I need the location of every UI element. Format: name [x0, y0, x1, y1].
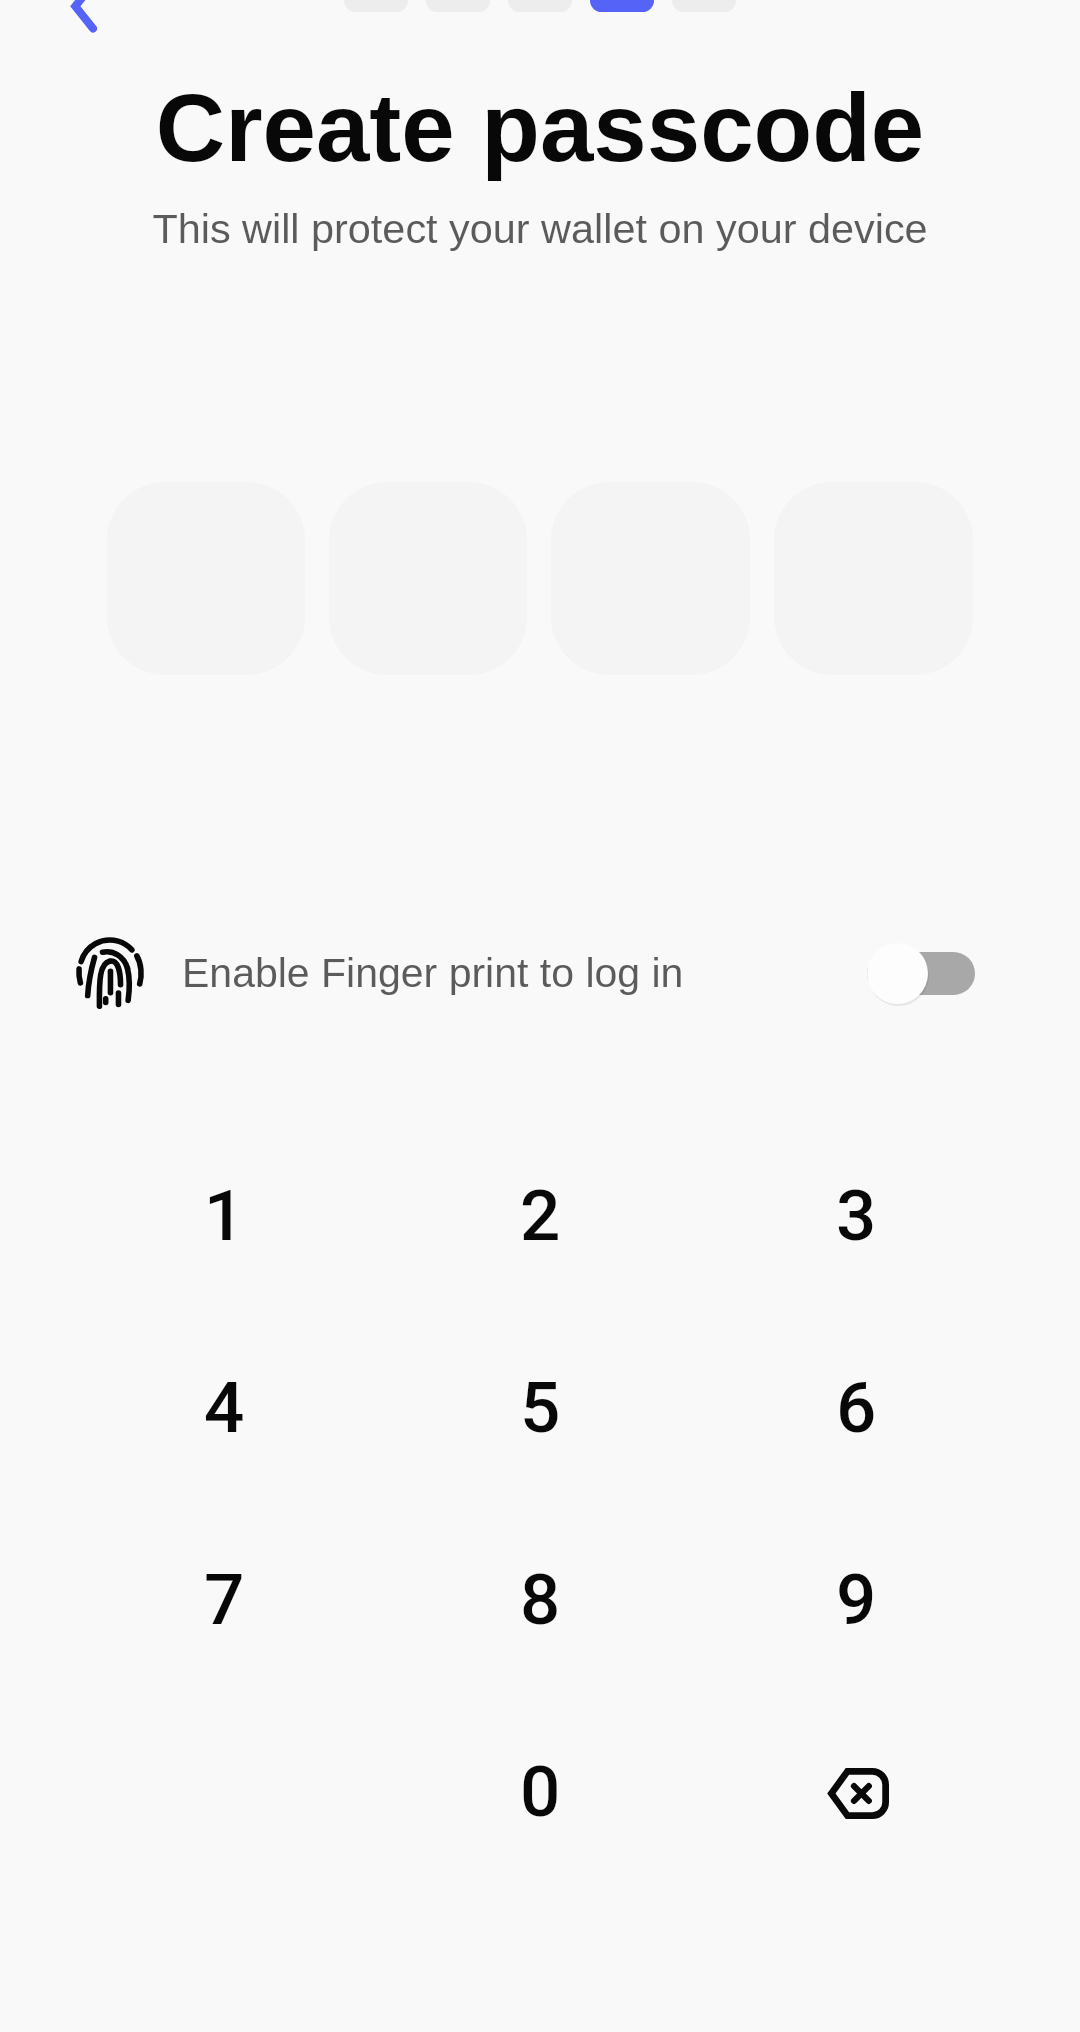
- button[interactable]: 8: [382, 1503, 698, 1695]
- staticText: Enable Finger print to log in: [182, 950, 684, 996]
- button[interactable]: 2: [382, 1119, 698, 1311]
- button[interactable]: 6: [698, 1311, 1014, 1503]
- staticText: 3: [836, 1174, 877, 1257]
- staticText: 5: [520, 1366, 561, 1449]
- button[interactable]: Back: [38, 0, 146, 60]
- button[interactable]: 1: [66, 1119, 382, 1311]
- staticText: 9: [836, 1558, 877, 1641]
- staticText: This will protect your wallet on your de…: [0, 206, 1080, 252]
- button[interactable]: Enable Finger print to log in: [77, 932, 975, 1014]
- button[interactable]: 0: [382, 1695, 698, 1887]
- button[interactable]: 4: [66, 1311, 382, 1503]
- staticText: 8: [520, 1558, 561, 1641]
- staticText: 4: [204, 1366, 245, 1449]
- staticText: 6: [836, 1366, 877, 1449]
- button[interactable]: Backspace: [698, 1695, 1014, 1887]
- staticText: 2: [520, 1174, 561, 1257]
- staticText: 7: [204, 1558, 245, 1641]
- button[interactable]: 3: [698, 1119, 1014, 1311]
- button[interactable]: 9: [698, 1503, 1014, 1695]
- button[interactable]: 7: [66, 1503, 382, 1695]
- staticText: 0: [520, 1750, 561, 1833]
- staticText: 1: [204, 1174, 245, 1257]
- staticText: Create passcode: [0, 74, 1080, 181]
- button[interactable]: 5: [382, 1311, 698, 1503]
